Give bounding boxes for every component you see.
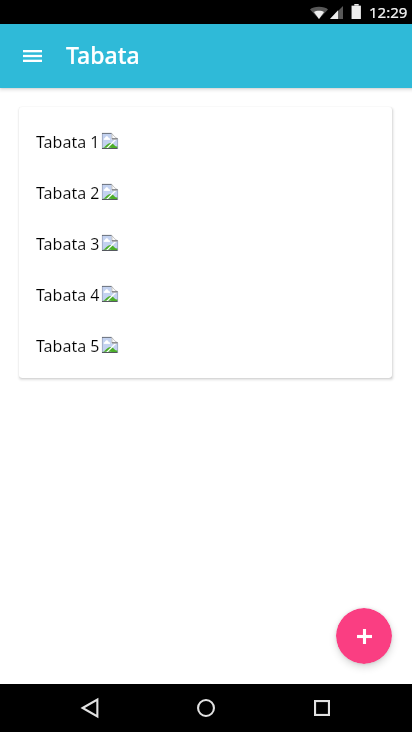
button[interactable]: Home xyxy=(182,684,230,732)
button[interactable]: Add xyxy=(336,608,392,664)
staticText: Tabata 3 xyxy=(36,233,100,255)
staticText: Tabata 5 xyxy=(36,335,100,357)
staticText: Tabata 4 xyxy=(36,284,100,306)
staticText: 12:29 xyxy=(369,2,408,22)
staticText: Tabata xyxy=(66,39,140,70)
button[interactable]: Tabata 2 xyxy=(19,167,392,218)
staticText: Tabata 2 xyxy=(36,182,100,204)
button[interactable]: Tabata 5 xyxy=(19,320,392,371)
button[interactable]: Recent apps xyxy=(298,684,346,732)
button[interactable]: Tabata 3 xyxy=(19,218,392,269)
button[interactable]: Back xyxy=(66,684,114,732)
button[interactable]: Tabata 1 xyxy=(19,116,392,167)
button[interactable]: Tabata 4 xyxy=(19,269,392,320)
button[interactable]: Open navigation menu xyxy=(0,24,64,88)
staticText: Tabata 1 xyxy=(36,131,100,153)
